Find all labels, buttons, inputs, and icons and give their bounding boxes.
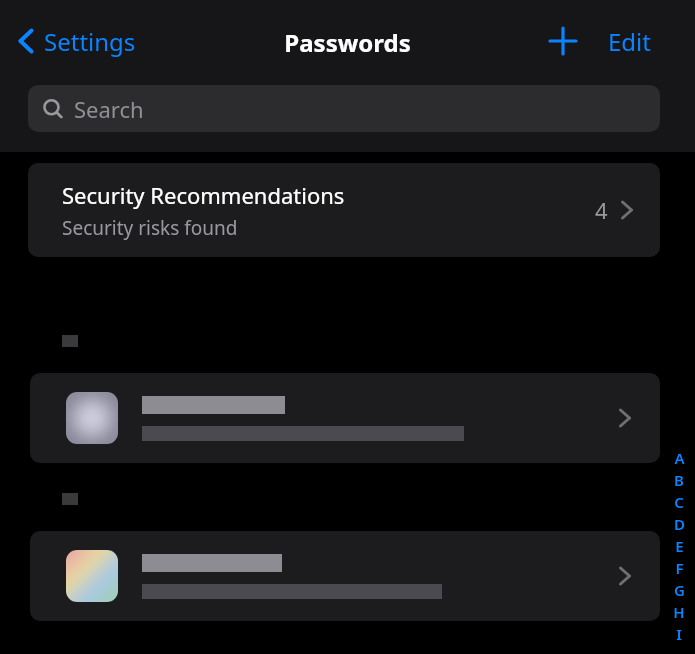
button[interactable]: Password entry — [30, 373, 660, 463]
button[interactable]: Edit — [602, 20, 657, 62]
staticText: Edit — [608, 25, 651, 58]
staticText: 4 — [595, 195, 608, 225]
staticText: A — [674, 448, 685, 468]
button[interactable]: Settings — [10, 20, 142, 62]
staticText: E — [675, 536, 684, 556]
staticText: G — [674, 580, 685, 600]
staticText: H — [673, 602, 685, 622]
staticText: C — [674, 492, 684, 512]
button[interactable]: Alphabet index — [668, 447, 690, 645]
staticText: Search — [74, 94, 144, 124]
staticText: Security risks found — [62, 215, 238, 241]
button[interactable]: Search — [28, 85, 660, 132]
button[interactable]: Security Recommendations — [28, 163, 660, 257]
staticText: Passwords — [0, 26, 695, 59]
staticText: Settings — [44, 25, 136, 58]
staticText: Security Recommendations — [62, 180, 345, 210]
staticText: D — [674, 514, 685, 534]
staticText: I — [676, 624, 682, 644]
button[interactable]: Password entry — [30, 531, 660, 621]
button[interactable]: Add password — [540, 18, 586, 64]
staticText: F — [675, 558, 684, 578]
staticText: B — [674, 470, 684, 490]
